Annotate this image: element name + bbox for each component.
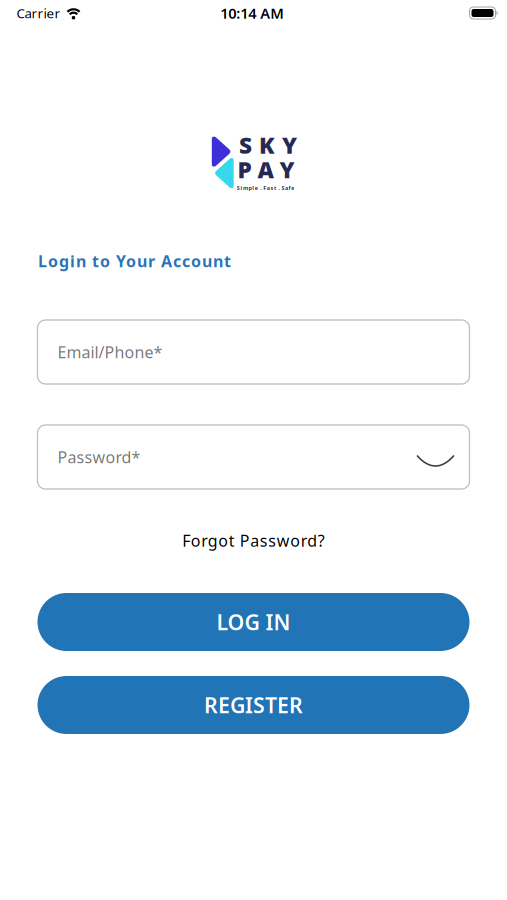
staticText: LOG IN	[216, 608, 290, 636]
button[interactable]: Email/Phone*	[37, 320, 469, 384]
staticText: SKY	[239, 130, 297, 160]
staticText: Simple . Fast . Safe	[237, 184, 294, 192]
button[interactable]: Password*	[37, 425, 469, 489]
staticText: 10:14 AM	[220, 3, 284, 23]
staticText: Password*	[57, 446, 140, 468]
staticText: PAY	[237, 154, 294, 184]
staticText: Carrier	[16, 4, 60, 22]
staticText: Email/Phone*	[57, 341, 162, 363]
button[interactable]: REGISTER	[37, 676, 469, 734]
button[interactable]: Forgot Password?	[182, 530, 325, 551]
staticText: Login to Your Account	[38, 250, 231, 272]
staticText: Forgot Password?	[182, 530, 325, 551]
staticText: REGISTER	[204, 691, 303, 719]
button[interactable]: Show password	[416, 454, 454, 467]
button[interactable]: LOG IN	[37, 593, 469, 651]
